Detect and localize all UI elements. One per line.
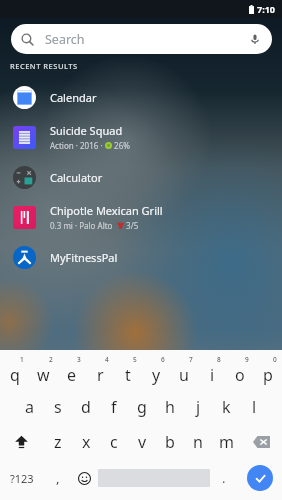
staticText: u <box>179 364 189 386</box>
button[interactable]: m <box>212 424 240 459</box>
staticText: j <box>196 396 201 418</box>
button[interactable]: MyFitnessPal <box>0 237 282 277</box>
button[interactable]: t <box>114 354 142 389</box>
staticText: RECENT RESULTS <box>10 61 78 71</box>
button[interactable]: l <box>240 389 268 424</box>
button[interactable]: k <box>212 389 240 424</box>
staticText: l <box>252 396 257 418</box>
button[interactable]: g <box>128 389 156 424</box>
button[interactable]: d <box>72 389 100 424</box>
staticText: o <box>235 364 245 386</box>
button[interactable]: , <box>44 459 71 497</box>
button[interactable]: v <box>128 424 156 459</box>
staticText: m <box>219 431 234 453</box>
button[interactable]: f <box>100 389 128 424</box>
staticText: 3 <box>77 355 81 364</box>
staticText: y <box>152 364 161 386</box>
staticText: w <box>37 364 50 386</box>
button[interactable]: Voice search <box>248 32 262 46</box>
staticText: k <box>222 396 231 418</box>
staticText: 8 <box>217 355 221 364</box>
staticText: v <box>138 431 147 453</box>
staticText: 1 <box>20 355 24 364</box>
staticText: r <box>97 364 104 386</box>
staticText: e <box>67 364 77 386</box>
staticText: h <box>165 396 175 418</box>
button[interactable]: Chipotle Mexican Grill <box>0 197 282 237</box>
button[interactable]: ?123 <box>0 459 44 497</box>
button[interactable]: p <box>254 354 282 389</box>
staticText: 5 <box>133 355 137 364</box>
staticText: 4 <box>105 355 109 364</box>
button[interactable]: i <box>198 354 226 389</box>
button[interactable]: r <box>86 354 114 389</box>
staticText: g <box>137 396 147 418</box>
staticText: c <box>110 431 118 453</box>
button[interactable]: Shift <box>0 424 43 459</box>
button[interactable]: Suicide Squad <box>0 117 282 157</box>
button[interactable]: x <box>72 424 100 459</box>
staticText: 0 <box>273 355 277 364</box>
button[interactable]: Emoji <box>71 459 98 497</box>
staticText: x <box>82 431 91 453</box>
staticText: n <box>193 431 203 453</box>
staticText: 6 <box>161 355 165 364</box>
staticText: Chipotle Mexican Grill <box>50 203 163 218</box>
staticText: d <box>81 396 91 418</box>
staticText: 0.3 mi · Palo Alto <box>50 220 117 231</box>
button[interactable]: e <box>58 354 86 389</box>
button[interactable]: u <box>170 354 198 389</box>
button[interactable]: h <box>156 389 184 424</box>
staticText: a <box>25 396 34 418</box>
staticText: MyFitnessPal <box>50 250 118 265</box>
staticText: b <box>165 431 175 453</box>
staticText: Suicide Squad <box>50 123 123 138</box>
staticText: 7 <box>189 355 193 364</box>
staticText: Action · 2016 · <box>50 140 105 151</box>
staticText: ?123 <box>10 471 34 486</box>
staticText: q <box>10 364 20 386</box>
staticText: Search <box>45 31 85 48</box>
button[interactable]: Calendar <box>0 77 282 117</box>
staticText: 2 <box>49 355 53 364</box>
button[interactable]: w <box>29 354 58 389</box>
button[interactable]: b <box>156 424 184 459</box>
button[interactable]: q <box>0 354 29 389</box>
button[interactable]: Enter <box>237 459 282 497</box>
button[interactable]: n <box>184 424 212 459</box>
button[interactable]: y <box>142 354 170 389</box>
button[interactable]: o <box>226 354 254 389</box>
staticText: 26% <box>112 140 130 151</box>
staticText: Calculator <box>50 170 103 185</box>
staticText: t <box>125 364 131 386</box>
staticText: 7:10 <box>257 3 275 15</box>
button[interactable]: s <box>44 389 72 424</box>
staticText: 9 <box>245 355 249 364</box>
button[interactable]: c <box>100 424 128 459</box>
button[interactable]: . <box>210 459 237 497</box>
staticText: , <box>56 469 60 487</box>
staticText: Calendar <box>50 90 97 105</box>
button[interactable]: Search <box>11 24 272 54</box>
staticText: f <box>111 396 117 418</box>
button[interactable]: z <box>43 424 72 459</box>
staticText: . <box>222 469 226 487</box>
button[interactable]: a <box>15 389 44 424</box>
staticText: 3/5 <box>124 220 139 231</box>
button[interactable]: j <box>184 389 212 424</box>
staticText: p <box>263 364 273 386</box>
staticText: i <box>210 364 215 386</box>
staticText: z <box>54 431 62 453</box>
staticText: s <box>54 396 62 418</box>
button[interactable]: Backspace <box>240 424 282 459</box>
button[interactable]: Calculator <box>0 157 282 197</box>
